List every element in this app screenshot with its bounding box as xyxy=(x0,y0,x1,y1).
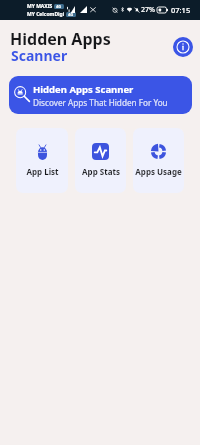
staticText: Discover Apps That Hidden For You xyxy=(33,97,168,108)
staticText: Scanner xyxy=(11,46,68,65)
staticText: 27% xyxy=(141,5,155,15)
button[interactable]: Info xyxy=(173,37,193,57)
staticText: 07:15 xyxy=(171,5,191,15)
staticText: 4G xyxy=(68,12,74,17)
staticText: Hidden Apps xyxy=(10,28,111,50)
staticText: Apps Usage xyxy=(135,166,182,177)
staticText: Hidden Apps Scanner xyxy=(33,83,134,96)
button[interactable]: App Stats xyxy=(75,128,126,193)
button[interactable]: Apps Usage xyxy=(133,128,184,193)
staticText: 4G xyxy=(56,4,62,9)
staticText: MY CelcomDigi xyxy=(27,11,65,18)
staticText: App Stats xyxy=(82,166,120,177)
button[interactable]: App List xyxy=(16,128,68,193)
staticText: App List xyxy=(26,166,59,177)
staticText: MY MAXIS xyxy=(27,3,53,10)
button[interactable]: Hidden Apps Scanner xyxy=(9,76,192,114)
